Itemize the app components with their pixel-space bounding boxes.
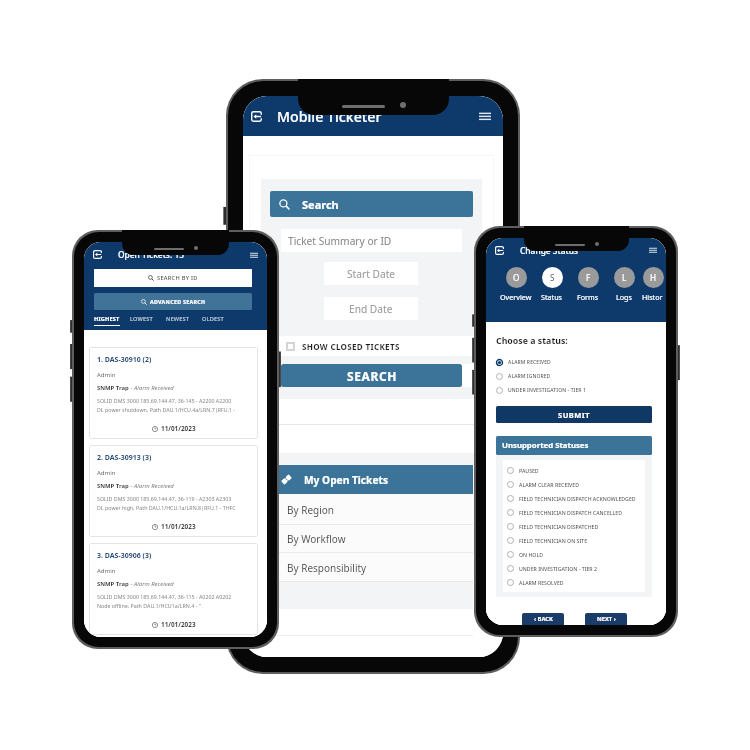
staticText: ‹ BACK [534, 615, 553, 623]
button[interactable]: Back [486, 238, 666, 262]
button[interactable]: ON HOLD [503, 547, 645, 561]
button[interactable]: S [534, 267, 570, 302]
other: Menu [250, 251, 258, 259]
other: Menu [649, 246, 657, 254]
staticText: Forms [577, 292, 599, 302]
staticText: SEARCH BY ID [157, 274, 198, 282]
staticText: Alarm Received [134, 482, 174, 490]
button[interactable]: O [498, 267, 534, 302]
button[interactable]: Search [270, 191, 473, 217]
staticText: SOLID DMS 3000 185.69.144.47, 36-115 - A… [97, 593, 232, 600]
staticText: Ticket Summary or ID [288, 234, 392, 248]
staticText: ALARM RECEIVED [508, 359, 551, 366]
staticText: UNDER INVESTIGATION - TIER 1 [508, 387, 586, 394]
staticText: - [129, 384, 134, 392]
button[interactable]: SHOW CLOSED TICKETS [281, 336, 462, 356]
other: Back [495, 246, 504, 255]
button[interactable]: FIELD TECHNICIAN DISPATCHED [503, 519, 645, 533]
staticText: UNDER INVESTIGATION - TIER 2 [519, 565, 597, 572]
staticText: F [586, 272, 591, 283]
staticText: Admin [97, 567, 116, 575]
button[interactable]: FIELD TECHNICIAN DISPATCH ACKNOWLEDGED [503, 491, 645, 505]
staticText: ADVANCED SEARCH [150, 298, 206, 305]
button[interactable]: Start Date [324, 262, 418, 285]
staticText: S [550, 272, 555, 283]
button[interactable]: ‹ BACK [522, 613, 564, 625]
staticText: SOLID DMS 3000 185.69.144.47, 36-119 - A… [97, 495, 232, 502]
button[interactable]: OLDEST [202, 315, 238, 325]
staticText: H [650, 272, 657, 283]
button[interactable]: SEARCH BY ID [94, 269, 252, 287]
staticText: Admin [97, 371, 116, 379]
staticText: FIELD TECHNICIAN DISPATCH CANCELLED [519, 509, 622, 516]
button[interactable]: Back [84, 242, 267, 267]
button[interactable]: HIGHEST [94, 315, 130, 326]
button[interactable]: My Open Tickets [270, 465, 473, 494]
button[interactable]: Back [243, 96, 503, 136]
staticText: Logs [616, 292, 632, 302]
button[interactable]: L [606, 267, 642, 302]
staticText: LOWEST [130, 315, 153, 323]
staticText: - [129, 580, 134, 588]
button[interactable]: LOWEST [130, 315, 166, 325]
staticText: ALARM CLEAR RECEIVED [519, 481, 579, 488]
staticText: By Workflow [287, 532, 346, 546]
staticText: History [642, 292, 665, 302]
staticText: FIELD TECHNICIAN DISPATCHED [519, 523, 599, 530]
staticText: End Date [349, 302, 393, 316]
staticText: OLDEST [202, 315, 224, 323]
button[interactable]: 1. DAS-30910 (2) [89, 347, 258, 439]
button[interactable]: FIELD TECHNICIAN DISPATCH CANCELLED [503, 505, 645, 519]
staticText: SUBMIT [558, 410, 591, 420]
button[interactable]: ALARM IGNORED [496, 369, 652, 383]
button[interactable]: By Region [270, 494, 473, 525]
staticText: 11/01/2023 [161, 522, 196, 531]
staticText: SNMP Trap [97, 580, 129, 588]
staticText: Overview [500, 292, 532, 302]
staticText: 2. DAS-30913 (3) [97, 453, 152, 463]
button[interactable]: NEWEST [166, 315, 202, 325]
button[interactable]: 3. DAS-30906 (3) [89, 543, 258, 635]
staticText: SNMP Trap [97, 482, 129, 490]
staticText: 11/01/2023 [161, 620, 196, 629]
button[interactable]: UNDER INVESTIGATION - TIER 2 [503, 561, 645, 575]
staticText: SHOW CLOSED TICKETS [302, 341, 400, 352]
staticText: 3. DAS-30906 (3) [97, 551, 152, 561]
staticText: ON HOLD [519, 551, 543, 558]
button[interactable]: ALARM RECEIVED [496, 355, 652, 369]
button[interactable]: UNDER INVESTIGATION - TIER 1 [496, 383, 652, 397]
staticText: 11/01/2023 [161, 424, 196, 433]
staticText: Search [302, 197, 339, 212]
other: Back [251, 111, 262, 122]
staticText: Alarm Received [134, 384, 174, 392]
staticText: Alarm Received [134, 580, 174, 588]
staticText: ALARM IGNORED [508, 373, 551, 380]
staticText: ALARM RESOLVED [519, 579, 564, 586]
staticText: Choose a status: [496, 335, 568, 347]
button[interactable]: NEXT › [585, 613, 627, 625]
staticText: Start Date [347, 267, 396, 281]
button[interactable]: SEARCH [281, 364, 462, 387]
button[interactable]: Ticket Summary or ID [281, 229, 462, 252]
button[interactable]: 2. DAS-30913 (3) [89, 445, 258, 537]
button[interactable]: By Responsibility [270, 553, 473, 582]
button[interactable]: By Workflow [270, 525, 473, 553]
staticText: By Region [287, 503, 335, 517]
staticText: 1. DAS-30910 (2) [97, 355, 152, 365]
button[interactable]: ALARM RESOLVED [503, 575, 645, 589]
staticText: NEXT › [597, 615, 616, 623]
staticText: SNMP Trap [97, 384, 129, 392]
button[interactable]: ADVANCED SEARCH [94, 293, 252, 310]
button[interactable]: F [570, 267, 606, 302]
button[interactable]: H [642, 267, 665, 302]
button[interactable]: ALARM CLEAR RECEIVED [503, 477, 645, 491]
button[interactable]: Unsupported Statuses [496, 436, 652, 455]
button[interactable]: PAUSED [503, 463, 645, 477]
button[interactable]: FIELD TECHNICIAN ON SITE [503, 533, 645, 547]
button[interactable]: End Date [324, 297, 418, 320]
staticText: Node offline, Path DAU.1/HCU1a/LRN.4 - " [97, 602, 201, 609]
button[interactable]: SUBMIT [496, 406, 652, 423]
other: Menu [479, 110, 491, 122]
staticText: HIGHEST [94, 315, 120, 323]
staticText: PAUSED [519, 467, 539, 474]
